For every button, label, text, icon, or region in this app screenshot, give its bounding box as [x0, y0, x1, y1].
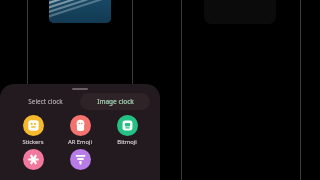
button[interactable]: AR Emoji: [58, 115, 102, 146]
button[interactable]: Filters: [58, 149, 102, 170]
button[interactable]: Stickers: [11, 115, 55, 146]
button[interactable]: Effects: [11, 149, 55, 170]
button[interactable]: Clock image preview: [49, 0, 111, 23]
staticText: Bitmoji: [117, 138, 137, 146]
staticText: Image clock: [97, 97, 134, 106]
staticText: AR Emoji: [68, 138, 92, 146]
button[interactable]: Image clock: [80, 93, 150, 110]
staticText: Stickers: [22, 138, 44, 146]
staticText: Select clock: [28, 97, 63, 106]
button[interactable]: Bitmoji: [105, 115, 149, 146]
button[interactable]: Select clock: [10, 93, 80, 110]
